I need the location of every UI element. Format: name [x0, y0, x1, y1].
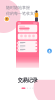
staticText: 随时随地掌握	[6, 5, 30, 10]
staticText: 交易记录	[17, 77, 37, 84]
staticText: 你的每一笔收支明细	[6, 11, 38, 21]
